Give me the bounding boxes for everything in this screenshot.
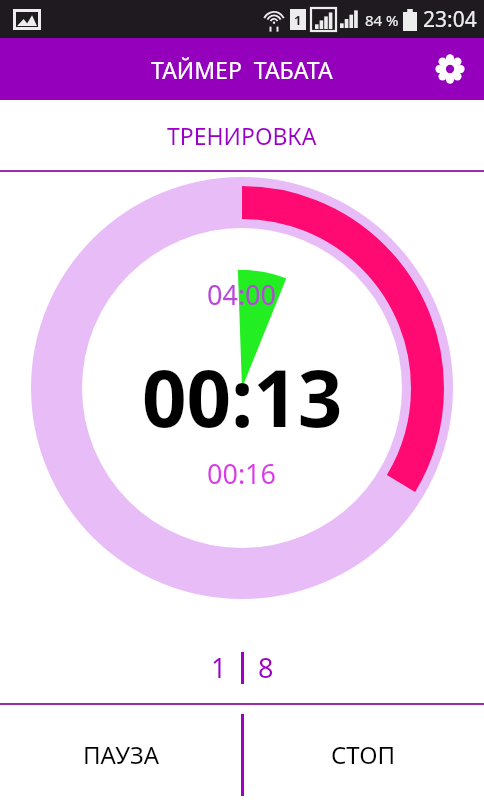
staticText: СТОП <box>331 738 396 771</box>
staticText: ТРЕНИРОВКА <box>167 120 317 151</box>
staticText: ПАУЗА <box>83 738 160 771</box>
button[interactable]: СТОП <box>242 705 484 804</box>
staticText: 00:13 <box>142 344 343 450</box>
staticText: 23:04 <box>423 5 477 34</box>
staticText: 8 <box>258 649 274 686</box>
staticText: 84 % <box>365 10 399 30</box>
staticText: ТАЙМЕР ТАБАТА <box>151 54 333 85</box>
staticText: 1 <box>294 11 302 29</box>
button[interactable]: ПАУЗА <box>0 705 242 804</box>
button[interactable]: ТРЕНИРОВКА <box>0 100 484 170</box>
button[interactable]: Settings <box>428 47 472 91</box>
staticText: 04:00 <box>207 276 277 313</box>
staticText: 1 <box>211 649 227 686</box>
staticText: 00:16 <box>207 455 277 492</box>
